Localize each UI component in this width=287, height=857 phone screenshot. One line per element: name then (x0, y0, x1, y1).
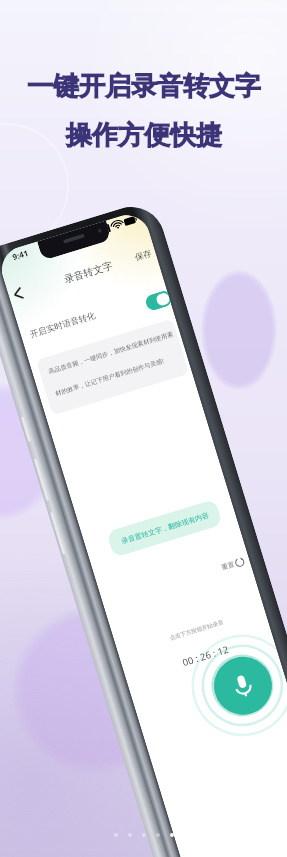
button[interactable]: 重置 (220, 557, 245, 572)
button[interactable]: 录音置转文字，翻除现有内容 (106, 499, 223, 558)
staticText: 保存 (134, 248, 153, 263)
staticText: 一键开启录音转文字 (27, 70, 261, 103)
staticText: 录音转文字 (63, 259, 114, 286)
staticText: 高品质音频，一键同步，加快发现素材到使用素材的效率，让记下用户看到的创作与灵感! (47, 330, 181, 398)
staticText: 00 : 26 : 12 (181, 643, 230, 669)
staticText: 9:41 (11, 247, 29, 262)
staticText: 操作方便快捷 (66, 119, 222, 152)
button[interactable]: Start recording (207, 649, 279, 722)
button[interactable]: Back (6, 281, 31, 307)
staticText: 点击下方按钮开始录音 (169, 619, 225, 642)
staticText: 录音置转文字，翻除现有内容 (120, 511, 210, 546)
staticText: 开启实时语音转化 (29, 310, 97, 340)
staticText: 重置 (220, 560, 235, 572)
button[interactable]: 保存 (130, 245, 157, 266)
button[interactable]: Toggle real-time conversion (144, 290, 171, 312)
